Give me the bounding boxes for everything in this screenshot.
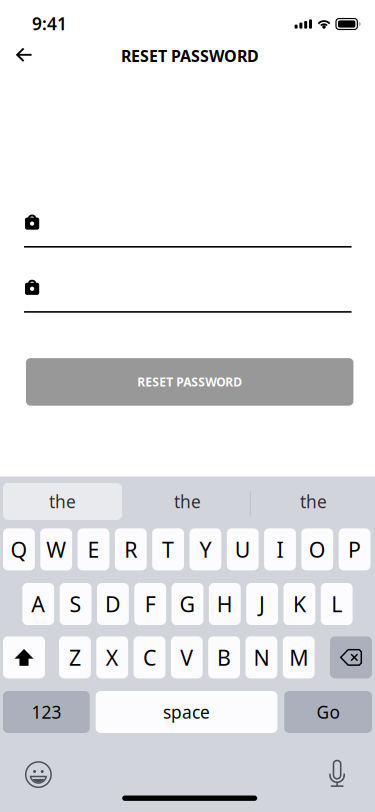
- staticText: K: [293, 590, 306, 618]
- button[interactable]: space: [96, 691, 277, 733]
- button[interactable]: the: [3, 483, 122, 520]
- staticText: RESET PASSWORD: [121, 45, 259, 66]
- button[interactable]: Y: [189, 528, 221, 570]
- button[interactable]: the: [254, 483, 373, 520]
- staticText: E: [87, 535, 99, 563]
- staticText: Y: [199, 535, 211, 563]
- staticText: the: [300, 490, 327, 513]
- button[interactable]: K: [283, 583, 315, 625]
- button[interactable]: Go: [284, 691, 372, 733]
- staticText: P: [348, 535, 361, 563]
- staticText: T: [162, 535, 174, 563]
- staticText: X: [106, 643, 119, 671]
- button[interactable]: C: [134, 636, 165, 678]
- staticText: B: [217, 643, 231, 671]
- staticText: A: [31, 590, 45, 618]
- button[interactable]: H: [209, 583, 241, 625]
- button[interactable]: E: [78, 528, 109, 570]
- button[interactable]: P: [339, 528, 370, 570]
- button[interactable]: RESET PASSWORD: [26, 358, 353, 406]
- staticText: R: [124, 535, 137, 563]
- button[interactable]: Delete: [330, 636, 372, 678]
- staticText: the: [174, 490, 201, 513]
- button[interactable]: the: [128, 483, 247, 520]
- button[interactable]: J: [246, 583, 278, 625]
- button[interactable]: 123: [3, 691, 90, 733]
- staticText: L: [331, 590, 342, 618]
- staticText: Go: [317, 700, 340, 723]
- button[interactable]: U: [227, 528, 259, 570]
- staticText: U: [235, 535, 251, 563]
- button[interactable]: Q: [3, 528, 35, 570]
- button[interactable]: N: [245, 636, 277, 678]
- button[interactable]: T: [152, 528, 184, 570]
- button[interactable]: F: [134, 583, 166, 625]
- staticText: O: [309, 535, 326, 563]
- staticText: Q: [10, 535, 27, 563]
- button[interactable]: Shift: [3, 636, 45, 678]
- button[interactable]: R: [115, 528, 147, 570]
- staticText: G: [179, 590, 195, 618]
- button[interactable]: V: [171, 636, 203, 678]
- button[interactable]: O: [301, 528, 333, 570]
- staticText: Z: [69, 643, 81, 671]
- button[interactable]: I: [264, 528, 296, 570]
- staticText: 123: [31, 700, 61, 723]
- button[interactable]: B: [208, 636, 240, 678]
- button[interactable]: Dictation: [317, 754, 357, 792]
- staticText: J: [259, 590, 265, 618]
- staticText: M: [289, 643, 308, 671]
- staticText: C: [143, 643, 156, 671]
- staticText: the: [49, 490, 76, 513]
- button[interactable]: A: [22, 583, 54, 625]
- button[interactable]: X: [96, 636, 128, 678]
- staticText: I: [276, 535, 283, 563]
- staticText: F: [145, 590, 156, 618]
- staticText: RESET PASSWORD: [137, 374, 242, 390]
- button[interactable]: L: [321, 583, 353, 625]
- button[interactable]: Emoji keyboard: [18, 756, 58, 794]
- staticText: W: [46, 535, 66, 563]
- staticText: 9:41: [32, 12, 67, 35]
- button[interactable]: G: [172, 583, 203, 625]
- button[interactable]: M: [283, 636, 315, 678]
- staticText: S: [70, 590, 82, 618]
- button[interactable]: S: [60, 583, 91, 625]
- staticText: D: [105, 590, 121, 618]
- button[interactable]: Back: [2, 35, 46, 75]
- button[interactable]: Z: [59, 636, 91, 678]
- staticText: N: [253, 643, 269, 671]
- button[interactable]: W: [40, 528, 72, 570]
- button[interactable]: D: [97, 583, 129, 625]
- staticText: V: [180, 643, 193, 671]
- staticText: H: [217, 590, 233, 618]
- staticText: space: [163, 700, 210, 723]
